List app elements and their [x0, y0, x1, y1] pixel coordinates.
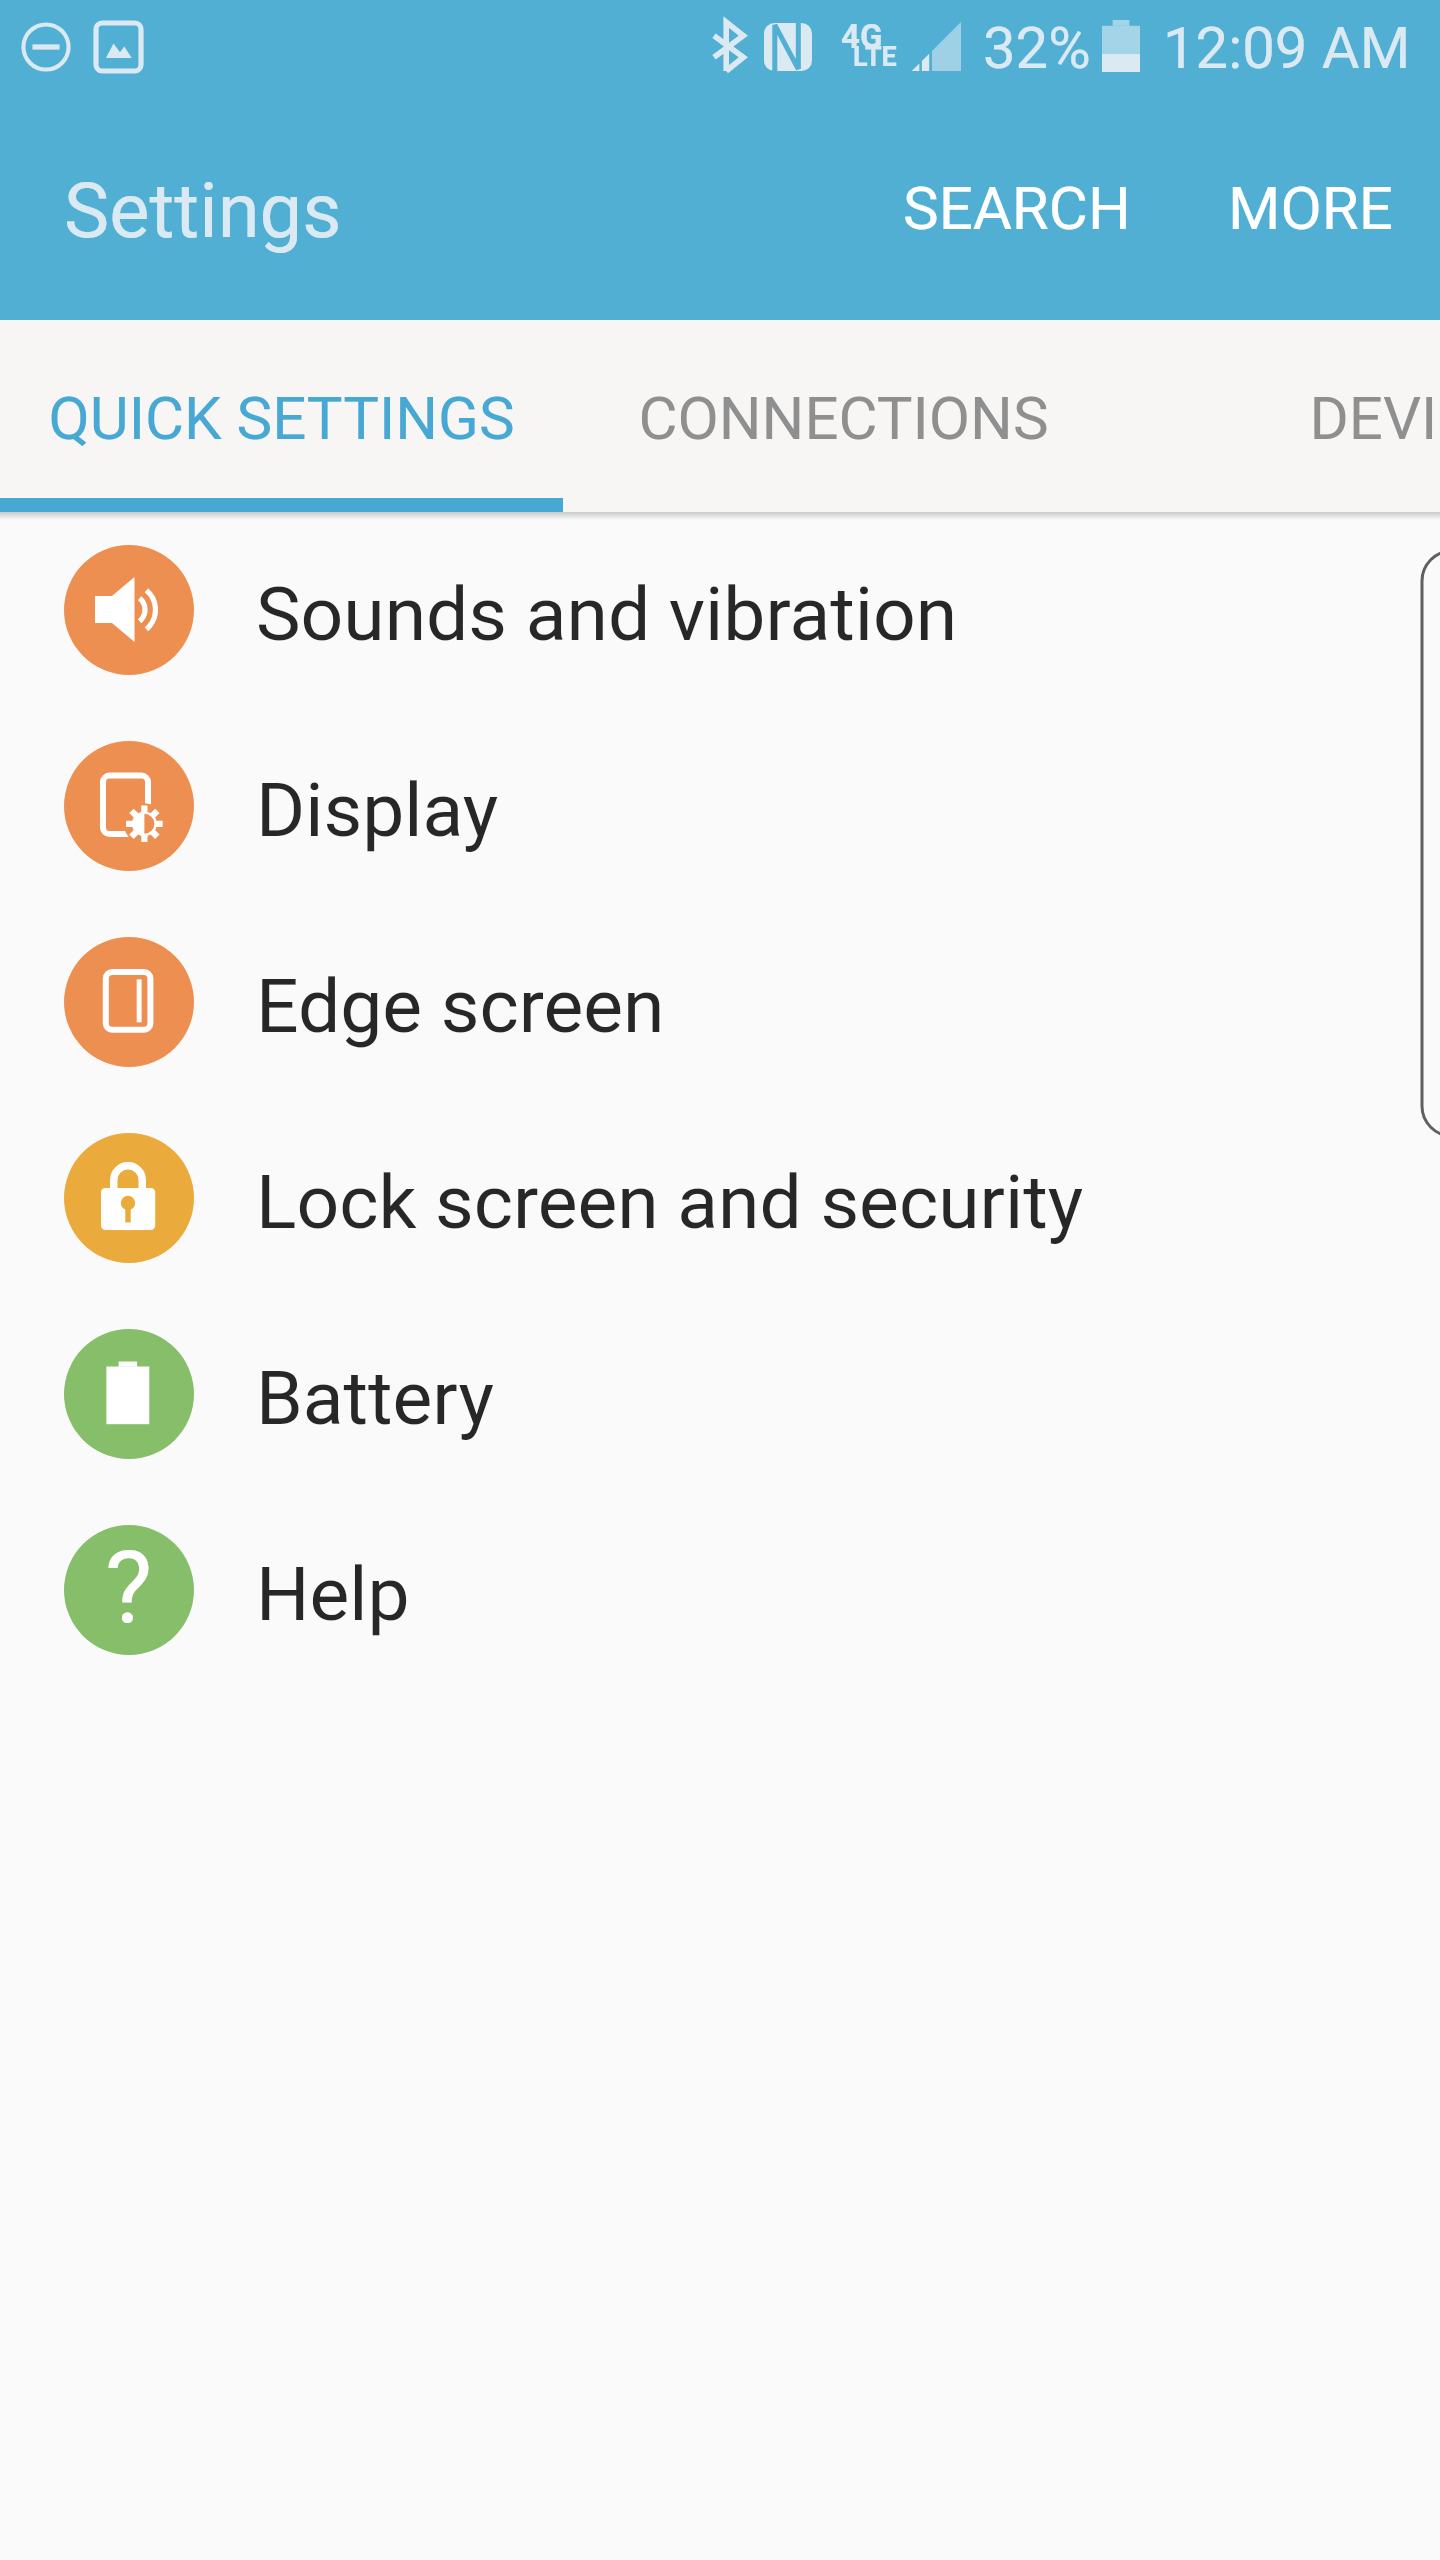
staticText: Help: [256, 1550, 410, 1638]
button[interactable]: Lock screen and security: [0, 1100, 1440, 1296]
button[interactable]: SEARCH: [881, 96, 1153, 320]
button[interactable]: MORE: [1195, 96, 1426, 320]
staticText: Battery: [256, 1354, 494, 1442]
other: Screenshot: [96, 23, 141, 71]
staticText: Sounds and vibration: [256, 570, 958, 658]
staticText: CONNECTIONS: [638, 383, 1049, 453]
staticText: Lock screen and security: [256, 1158, 1084, 1246]
other: Do not disturb: [22, 23, 70, 71]
staticText: 12:09 AM: [1163, 14, 1411, 82]
staticText: Settings: [64, 166, 342, 255]
staticText: 4G: [841, 17, 883, 56]
staticText: QUICK SETTINGS: [48, 383, 515, 453]
button[interactable]: ?: [0, 1492, 1440, 1688]
button[interactable]: Sounds and vibration: [0, 512, 1440, 708]
staticText: 32%: [983, 14, 1091, 82]
button[interactable]: Display: [0, 708, 1440, 904]
staticText: SEARCH: [903, 173, 1131, 243]
staticText: LTE: [853, 41, 897, 73]
button[interactable]: QUICK SETTINGS: [0, 320, 563, 512]
staticText: ?: [105, 1529, 153, 1646]
staticText: Edge screen: [256, 962, 665, 1050]
button[interactable]: DEVICE: [1124, 320, 1440, 512]
staticText: Display: [256, 766, 499, 854]
button[interactable]: CONNECTIONS: [563, 320, 1124, 512]
button[interactable]: Battery: [0, 1296, 1440, 1492]
button[interactable]: Edge screen: [0, 904, 1440, 1100]
staticText: MORE: [1228, 173, 1393, 243]
staticText: DEVICE: [1309, 383, 1440, 453]
